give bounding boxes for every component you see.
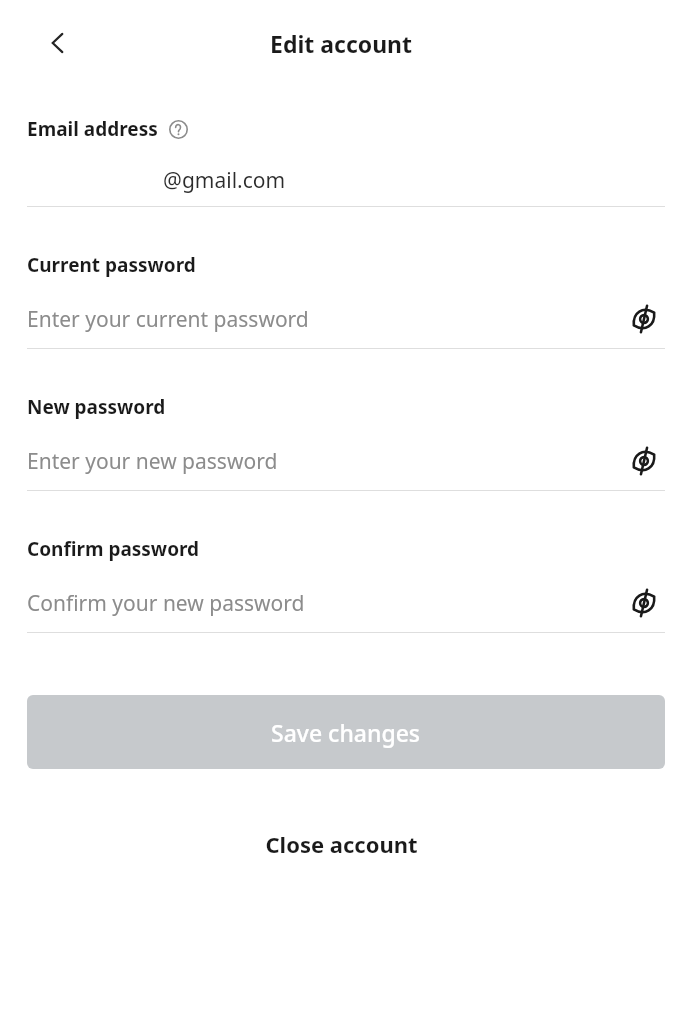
button[interactable]: Show password bbox=[623, 298, 665, 340]
button[interactable]: Show password bbox=[623, 582, 665, 624]
button[interactable]: @gmail.com bbox=[27, 160, 665, 200]
staticText: @gmail.com bbox=[163, 166, 286, 195]
staticText: Save changes bbox=[271, 717, 421, 748]
staticText: Enter your current password bbox=[27, 305, 623, 334]
staticText: Close account bbox=[265, 829, 418, 859]
staticText: Edit account bbox=[270, 28, 413, 59]
staticText: New password bbox=[27, 394, 166, 420]
button[interactable]: Help about email address bbox=[165, 116, 191, 142]
button[interactable]: Back bbox=[36, 21, 80, 65]
button[interactable]: Save changes bbox=[27, 695, 665, 769]
staticText: Confirm password bbox=[27, 536, 200, 562]
staticText: Current password bbox=[27, 252, 196, 278]
staticText: Confirm your new password bbox=[27, 589, 623, 618]
button[interactable]: Show password bbox=[623, 440, 665, 482]
staticText: Enter your new password bbox=[27, 447, 623, 476]
button[interactable]: Close account bbox=[0, 819, 683, 869]
staticText: Email address bbox=[27, 116, 158, 142]
